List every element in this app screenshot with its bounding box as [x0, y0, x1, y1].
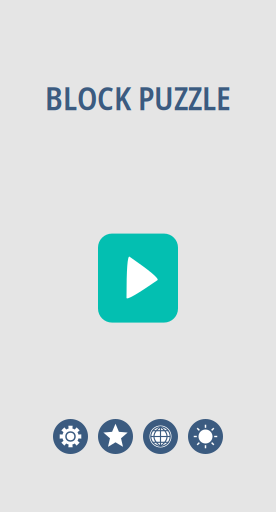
button[interactable]: Brightness	[188, 419, 223, 454]
button[interactable]: Language	[143, 419, 178, 454]
staticText: BLOCK PUZZLE	[45, 76, 231, 120]
button[interactable]: Play	[98, 234, 178, 323]
button[interactable]: Settings	[53, 419, 88, 454]
button[interactable]: Rate this game	[98, 419, 133, 454]
